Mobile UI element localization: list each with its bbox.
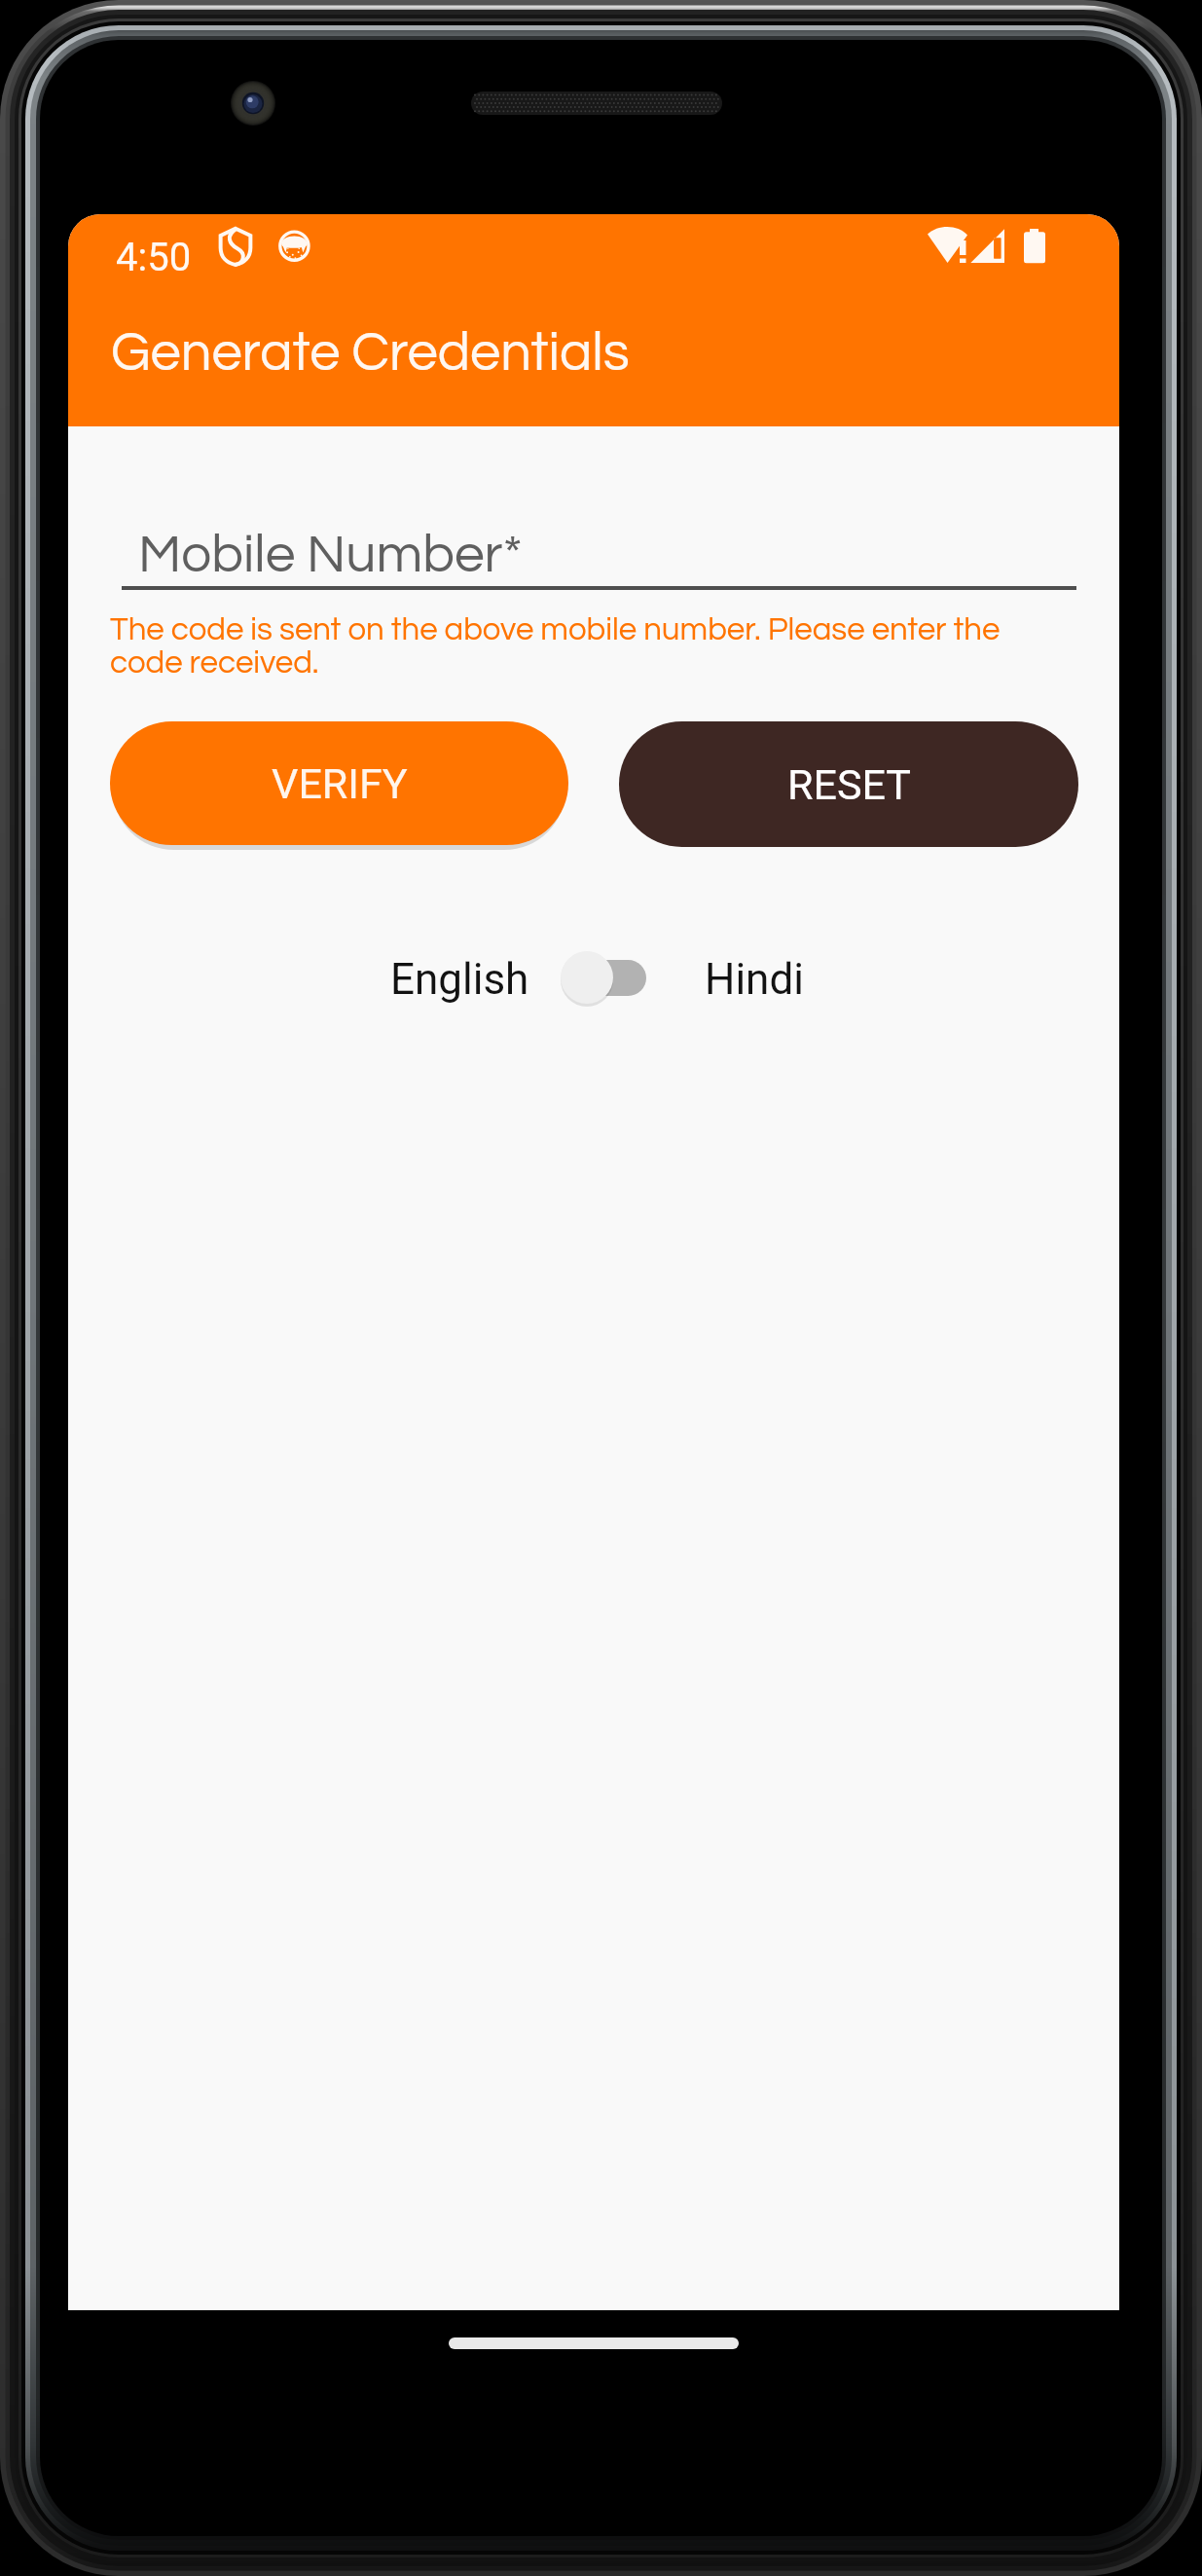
staticText: Hindi bbox=[705, 954, 804, 1005]
staticText: 4:50 bbox=[116, 235, 192, 280]
button[interactable]: Language toggle bbox=[551, 940, 652, 1014]
staticText: Generate Credentials bbox=[111, 325, 630, 382]
staticText: RESET bbox=[787, 760, 911, 809]
button[interactable]: Mobile Number input bbox=[122, 506, 1076, 613]
staticText: VERIFY bbox=[272, 759, 408, 808]
button[interactable]: VERIFY bbox=[110, 721, 568, 845]
staticText: English bbox=[390, 954, 529, 1005]
staticText: The code is sent on the above mobile num… bbox=[110, 613, 1078, 680]
staticText: Mobile Number* bbox=[138, 528, 524, 583]
button[interactable]: RESET bbox=[619, 721, 1078, 847]
